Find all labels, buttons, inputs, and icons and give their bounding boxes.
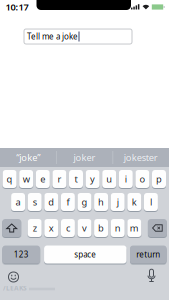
button[interactable]: space: [44, 245, 126, 263]
staticText: o: [139, 173, 145, 185]
staticText: /LEAKS: [3, 284, 27, 292]
staticText: a: [16, 196, 21, 208]
staticText: 10:17: [5, 1, 28, 13]
button[interactable]: t: [69, 170, 83, 188]
button[interactable]: “joke”: [0, 148, 56, 167]
staticText: e: [40, 173, 45, 185]
staticText: “joke”: [16, 151, 40, 164]
staticText: r: [57, 173, 61, 185]
button[interactable]: j: [111, 193, 125, 211]
staticText: w: [23, 173, 30, 185]
button[interactable]: c: [61, 219, 75, 237]
staticText: b: [98, 222, 104, 234]
staticText: v: [82, 222, 87, 234]
staticText: z: [33, 222, 37, 234]
staticText: n: [115, 222, 121, 234]
staticText: space: [74, 249, 96, 260]
button[interactable]: l: [144, 193, 158, 211]
button[interactable]: jokester: [113, 148, 169, 167]
staticText: y: [90, 173, 95, 185]
button[interactable]: w: [19, 170, 33, 188]
button[interactable]: Shift: [2, 219, 21, 237]
button[interactable]: a: [11, 193, 25, 211]
button[interactable]: 123: [2, 245, 40, 263]
staticText: d: [48, 196, 54, 208]
staticText: k: [132, 196, 137, 208]
button[interactable]: g: [77, 193, 91, 211]
staticText: j: [117, 196, 119, 208]
staticText: l: [150, 196, 152, 208]
staticText: c: [66, 222, 70, 234]
staticText: h: [98, 196, 104, 208]
button[interactable]: p: [152, 170, 166, 188]
button[interactable]: v: [77, 219, 91, 237]
staticText: x: [49, 222, 54, 234]
button[interactable]: h: [94, 193, 108, 211]
staticText: joker: [73, 151, 95, 164]
button[interactable]: r: [52, 170, 66, 188]
button[interactable]: Delete: [148, 219, 167, 237]
button[interactable]: z: [28, 219, 42, 237]
staticText: 123: [14, 249, 29, 260]
staticText: t: [74, 173, 77, 185]
staticText: jokester: [124, 151, 158, 164]
button[interactable]: n: [111, 219, 125, 237]
staticText: i: [125, 173, 127, 185]
button[interactable]: o: [135, 170, 149, 188]
button[interactable]: i: [119, 170, 133, 188]
staticText: p: [156, 173, 162, 185]
button[interactable]: joker: [56, 148, 112, 167]
button[interactable]: f: [61, 193, 75, 211]
staticText: Tell me a joke: [27, 31, 78, 42]
staticText: s: [33, 196, 37, 208]
button[interactable]: d: [44, 193, 58, 211]
button[interactable]: Emoji: [5, 269, 21, 285]
button[interactable]: b: [94, 219, 108, 237]
button[interactable]: q: [3, 170, 17, 188]
staticText: u: [106, 173, 112, 185]
button[interactable]: return: [130, 245, 167, 263]
button[interactable]: Dictate: [144, 267, 158, 283]
button[interactable]: e: [36, 170, 50, 188]
staticText: g: [81, 196, 87, 208]
staticText: return: [136, 249, 160, 260]
button[interactable]: y: [86, 170, 100, 188]
staticText: m: [130, 222, 139, 234]
staticText: f: [66, 196, 69, 208]
button[interactable]: s: [28, 193, 42, 211]
staticText: q: [7, 173, 13, 185]
button[interactable]: k: [127, 193, 141, 211]
button[interactable]: u: [102, 170, 116, 188]
button[interactable]: x: [44, 219, 58, 237]
button[interactable]: m: [127, 219, 141, 237]
